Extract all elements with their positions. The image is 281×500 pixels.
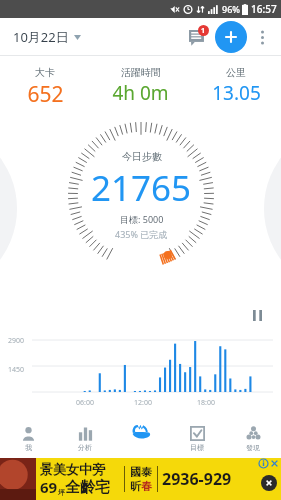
staticText: 2900: [8, 336, 25, 346]
staticText: 目標: 5000: [120, 213, 164, 225]
button[interactable]: Close ad: [261, 475, 277, 491]
button[interactable]: 活躍時間: [90, 64, 191, 108]
button[interactable]: More options: [247, 22, 277, 52]
staticText: 坪: [58, 488, 65, 497]
staticText: 06:00: [76, 398, 94, 408]
staticText: 活躍時間: [121, 66, 161, 79]
button[interactable]: 10月22日: [0, 24, 89, 50]
button[interactable]: 今日步數: [67, 121, 215, 269]
staticText: 全齡宅: [65, 478, 110, 497]
button[interactable]: 公里: [191, 64, 281, 108]
button[interactable]: Pause: [246, 304, 268, 326]
staticText: 1450: [8, 365, 25, 375]
staticText: 國: [130, 465, 141, 479]
button[interactable]: 發現: [225, 420, 281, 458]
staticText: 10月22日: [13, 28, 69, 46]
staticText: 發現: [246, 443, 260, 452]
button[interactable]: Steps: [123, 414, 159, 450]
staticText: 21765: [91, 164, 192, 212]
staticText: 18:00: [197, 398, 215, 408]
staticText: 435% 已完成: [115, 228, 168, 240]
staticText: 652: [27, 80, 64, 109]
staticText: 今日步數: [122, 150, 162, 163]
staticText: 泰: [141, 465, 152, 479]
button[interactable]: Add: [215, 21, 247, 53]
staticText: 景美女中旁: [40, 461, 105, 477]
button[interactable]: 分析: [57, 420, 113, 458]
staticText: 大卡: [35, 66, 55, 79]
staticText: 96%: [222, 3, 240, 15]
button[interactable]: 目標: [169, 420, 225, 458]
staticText: 1: [201, 26, 206, 36]
button[interactable]: Messages: [179, 19, 215, 55]
staticText: 昕: [130, 479, 141, 493]
staticText: 16:57: [251, 2, 277, 16]
staticText: 目標: [190, 443, 204, 452]
staticText: 13.05: [212, 80, 261, 106]
staticText: 春: [141, 479, 152, 493]
staticText: 2936-929: [162, 468, 232, 490]
staticText: 4h 0m: [112, 80, 169, 106]
staticText: 12:00: [134, 398, 152, 408]
staticText: 公里: [226, 66, 246, 79]
staticText: 我: [25, 443, 32, 452]
button[interactable]: Advertisement: [0, 458, 281, 500]
staticText: 69: [40, 477, 58, 497]
button[interactable]: 我: [0, 420, 57, 458]
button[interactable]: 大卡: [0, 64, 90, 111]
staticText: 分析: [78, 443, 92, 452]
